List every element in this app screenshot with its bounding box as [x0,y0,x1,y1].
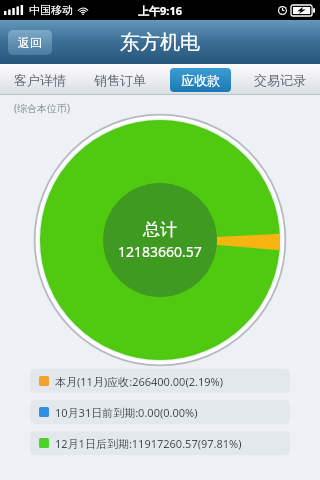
button[interactable]: 应收款 [170,68,231,92]
staticText: 总计 [143,219,177,240]
staticText: 中国移动 [29,3,73,17]
button[interactable]: 本月(11月)应收:266400.00(2.19%) [30,369,290,393]
staticText: (综合本位币) [14,101,70,115]
button[interactable]: 10月31日前到期:0.00(0.00%) [30,400,290,424]
staticText: 返回 [18,35,42,50]
staticText: 10月31日前到期:0.00(0.00%) [55,405,198,420]
button[interactable]: 客户详情 [6,68,74,92]
staticText: 应收款 [181,72,220,88]
staticText: 上午9:16 [138,3,182,18]
staticText: 销售订单 [94,72,146,88]
staticText: 本月(11月)应收:266400.00(2.19%) [55,374,223,389]
staticText: 东方机电 [120,30,200,55]
staticText: 12月1日后到期:11917260.57(97.81%) [55,436,242,451]
button[interactable]: 12月1日后到期:11917260.57(97.81%) [30,431,290,455]
button[interactable]: 销售订单 [86,68,154,92]
button[interactable]: 交易记录 [246,68,314,92]
button[interactable]: 返回 [8,30,52,55]
staticText: 12183660.57 [118,242,202,261]
staticText: 交易记录 [254,72,306,88]
staticText: 客户详情 [14,72,66,88]
